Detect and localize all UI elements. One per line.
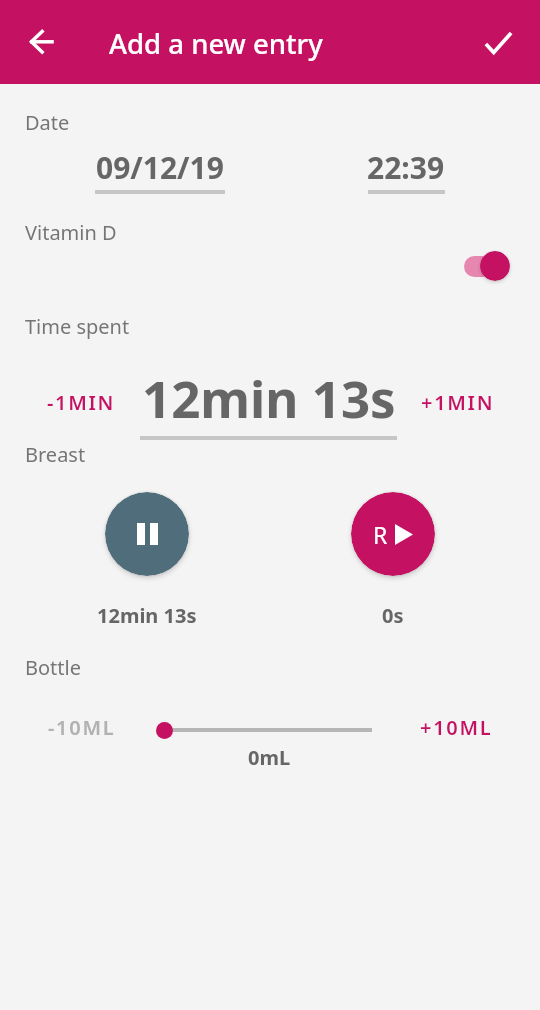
staticText: 22:39 [367, 147, 445, 188]
button[interactable]: -1MIN [33, 383, 129, 421]
staticText: Vitamin D [25, 219, 117, 246]
staticText: 12min 13s [142, 363, 396, 432]
staticText: 0mL [248, 744, 291, 771]
staticText: -1MIN [47, 389, 116, 416]
staticText: 0s [382, 602, 404, 629]
staticText: 12min 13s [97, 602, 197, 629]
staticText: Bottle [25, 654, 81, 681]
staticText: R [373, 519, 388, 550]
button[interactable]: +10ML [406, 708, 506, 746]
staticText: Add a new entry [109, 25, 323, 62]
staticText: -10ML [48, 714, 116, 741]
button[interactable]: 0mL [236, 741, 300, 769]
button[interactable]: Bottle amount slider [156, 712, 372, 748]
staticText: +10ML [420, 714, 493, 741]
staticText: +1MIN [421, 389, 495, 416]
button[interactable]: +1MIN [408, 383, 508, 421]
button[interactable]: Back [18, 18, 66, 66]
button[interactable]: Vitamin D toggle [459, 247, 515, 285]
staticText: Breast [25, 441, 86, 468]
button[interactable]: Save entry [474, 18, 522, 66]
staticText: Date [25, 109, 70, 136]
button[interactable]: -10ML [34, 708, 130, 746]
button[interactable]: Pause left breast timer [105, 492, 189, 576]
button[interactable]: 09/12/19 [89, 143, 231, 194]
button[interactable]: 12min 13s [134, 359, 403, 444]
staticText: Time spent [25, 313, 130, 340]
button[interactable]: 22:39 [361, 143, 451, 194]
staticText: 09/12/19 [96, 147, 224, 188]
button[interactable]: Start right breast timer [351, 492, 435, 576]
